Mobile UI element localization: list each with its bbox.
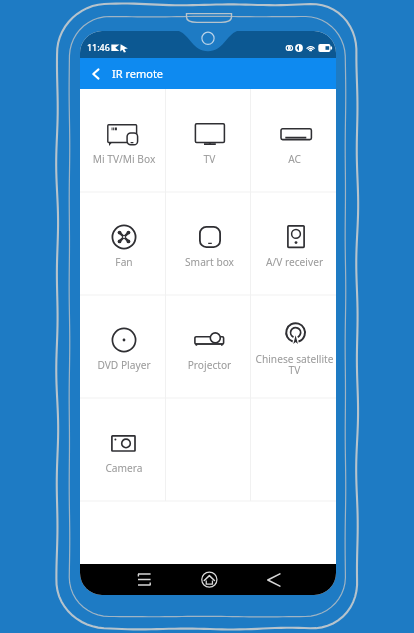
button[interactable]: Projector [166,295,251,398]
staticText: Chinese satellite TV [253,352,336,377]
staticText: TV [168,152,251,166]
button[interactable]: Mi TV/Mi Box [80,89,166,192]
button[interactable]: Back [257,564,291,595]
staticText: DVD Player [82,358,166,372]
button[interactable]: Home [192,564,226,595]
staticText: A/V receiver [253,255,336,269]
button[interactable]: Back [84,58,108,89]
button[interactable]: TV [166,89,251,192]
button[interactable]: Camera [80,398,166,501]
button[interactable]: Chinese satellite TV [251,295,336,398]
staticText: AC [253,152,336,166]
button[interactable]: Recent apps [127,564,161,595]
staticText: Camera [82,461,166,475]
button[interactable]: AC [251,89,336,192]
staticText: IR remote [112,66,164,81]
staticText: Projector [168,358,251,372]
button[interactable]: DVD Player [80,295,166,398]
button[interactable]: Fan [80,192,166,295]
button[interactable]: Smart box [166,192,251,295]
staticText: Fan [82,255,166,269]
staticText: Smart box [168,255,251,269]
staticText: Mi TV/Mi Box [82,152,166,166]
button[interactable]: A/V receiver [251,192,336,295]
staticText: 11:46 [87,41,110,53]
